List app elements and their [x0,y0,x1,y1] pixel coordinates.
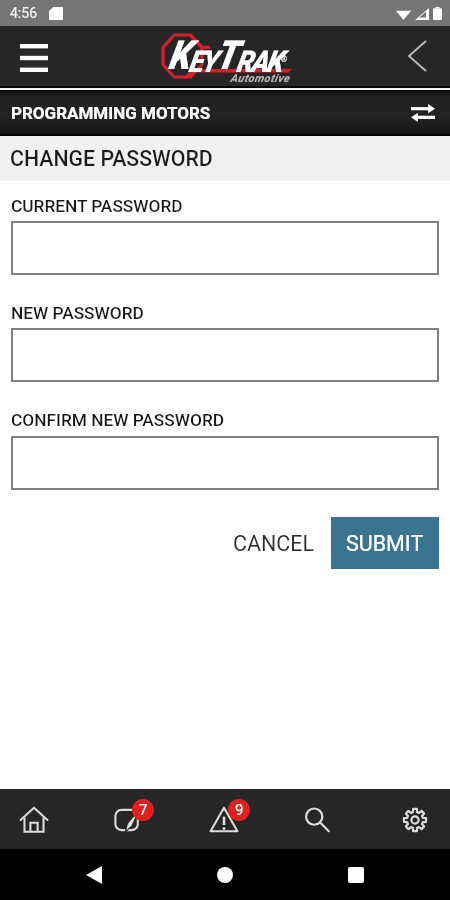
button[interactable] [11,436,439,490]
button[interactable]: Alerts [180,789,270,849]
staticText: NEW PASSWORD [11,303,144,323]
staticText: 4:56 [10,5,37,21]
staticText: Automotive [230,72,290,85]
staticText: ® [281,54,284,65]
button[interactable]: Search [270,789,360,849]
staticText: CURRENT PASSWORD [11,196,183,216]
button[interactable] [11,328,439,382]
button[interactable]: Switch view [403,93,443,133]
button[interactable]: Back [74,855,114,895]
button[interactable]: CANCEL [224,517,324,569]
staticText: SUBMIT [346,531,424,556]
staticText: 9 [235,801,244,819]
staticText: CHANGE PASSWORD [10,146,213,171]
staticText: 7 [139,801,148,819]
staticText: RAK [236,44,281,79]
button[interactable]: Recent apps [336,855,376,895]
button[interactable]: Work orders [90,789,180,849]
staticText: T [215,32,236,79]
button[interactable]: Open navigation menu [8,32,60,84]
button[interactable]: Home [0,789,90,849]
staticText: PROGRAMMING MOTORS [11,103,211,123]
button[interactable]: SUBMIT [331,517,439,569]
staticText: CANCEL [233,531,315,556]
staticText: K [168,32,188,79]
staticText: EY [188,44,215,79]
button[interactable] [11,221,439,275]
staticText: CONFIRM NEW PASSWORD [11,410,225,430]
button[interactable]: Settings [360,789,450,849]
button[interactable]: Home [205,855,245,895]
button[interactable]: Back [393,32,441,80]
